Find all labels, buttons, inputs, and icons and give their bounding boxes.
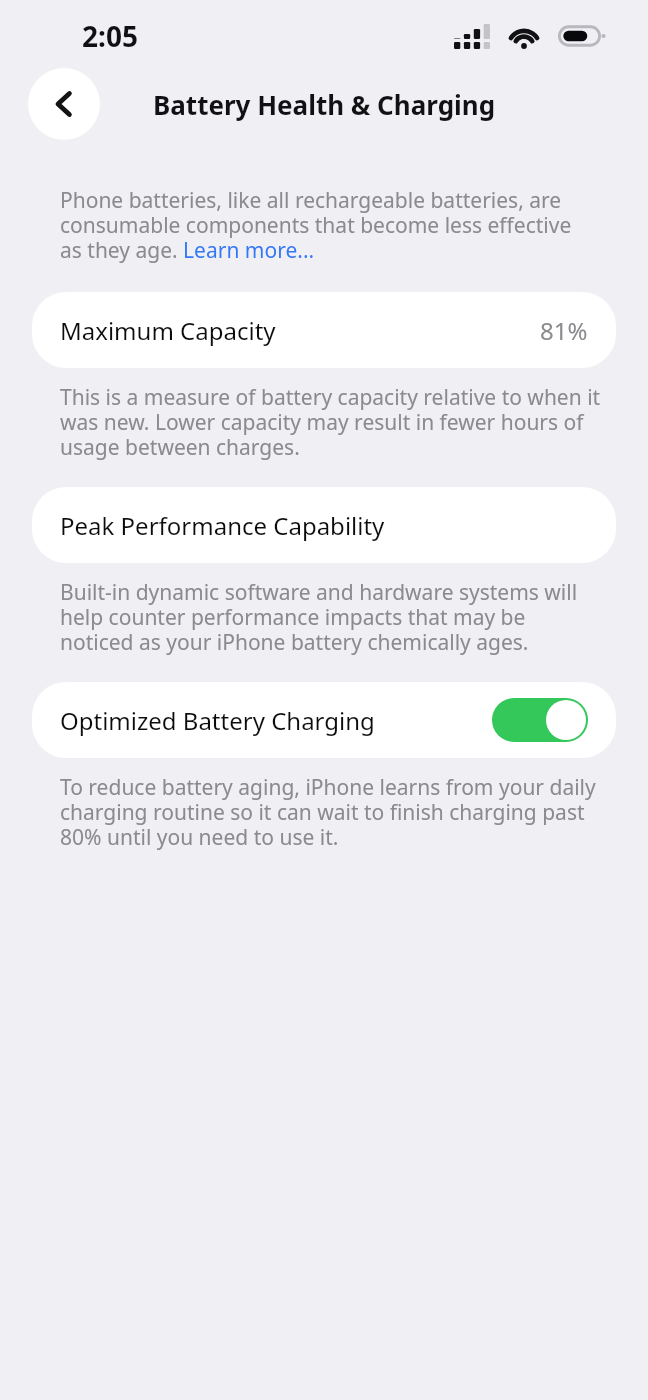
staticText: Battery Health & Charging — [153, 87, 496, 122]
button[interactable]: Optimized Battery Charging — [492, 698, 588, 742]
staticText: Phone batteries, like all rechargeable b… — [60, 186, 598, 264]
staticText: To reduce battery aging, iPhone learns f… — [60, 773, 604, 851]
button[interactable]: Optimized Battery Charging — [32, 682, 616, 758]
staticText: 81% — [540, 314, 588, 347]
staticText: Maximum Capacity — [60, 314, 540, 347]
button[interactable]: Maximum Capacity — [32, 292, 616, 368]
staticText: Optimized Battery Charging — [60, 704, 492, 737]
staticText: 2:05 — [82, 17, 138, 55]
button[interactable]: Back — [28, 68, 100, 140]
button[interactable]: Peak Performance Capability — [32, 487, 616, 563]
staticText: Peak Performance Capability — [60, 509, 588, 542]
staticText: Built-in dynamic software and hardware s… — [60, 578, 604, 656]
staticText: This is a measure of battery capacity re… — [60, 383, 604, 461]
